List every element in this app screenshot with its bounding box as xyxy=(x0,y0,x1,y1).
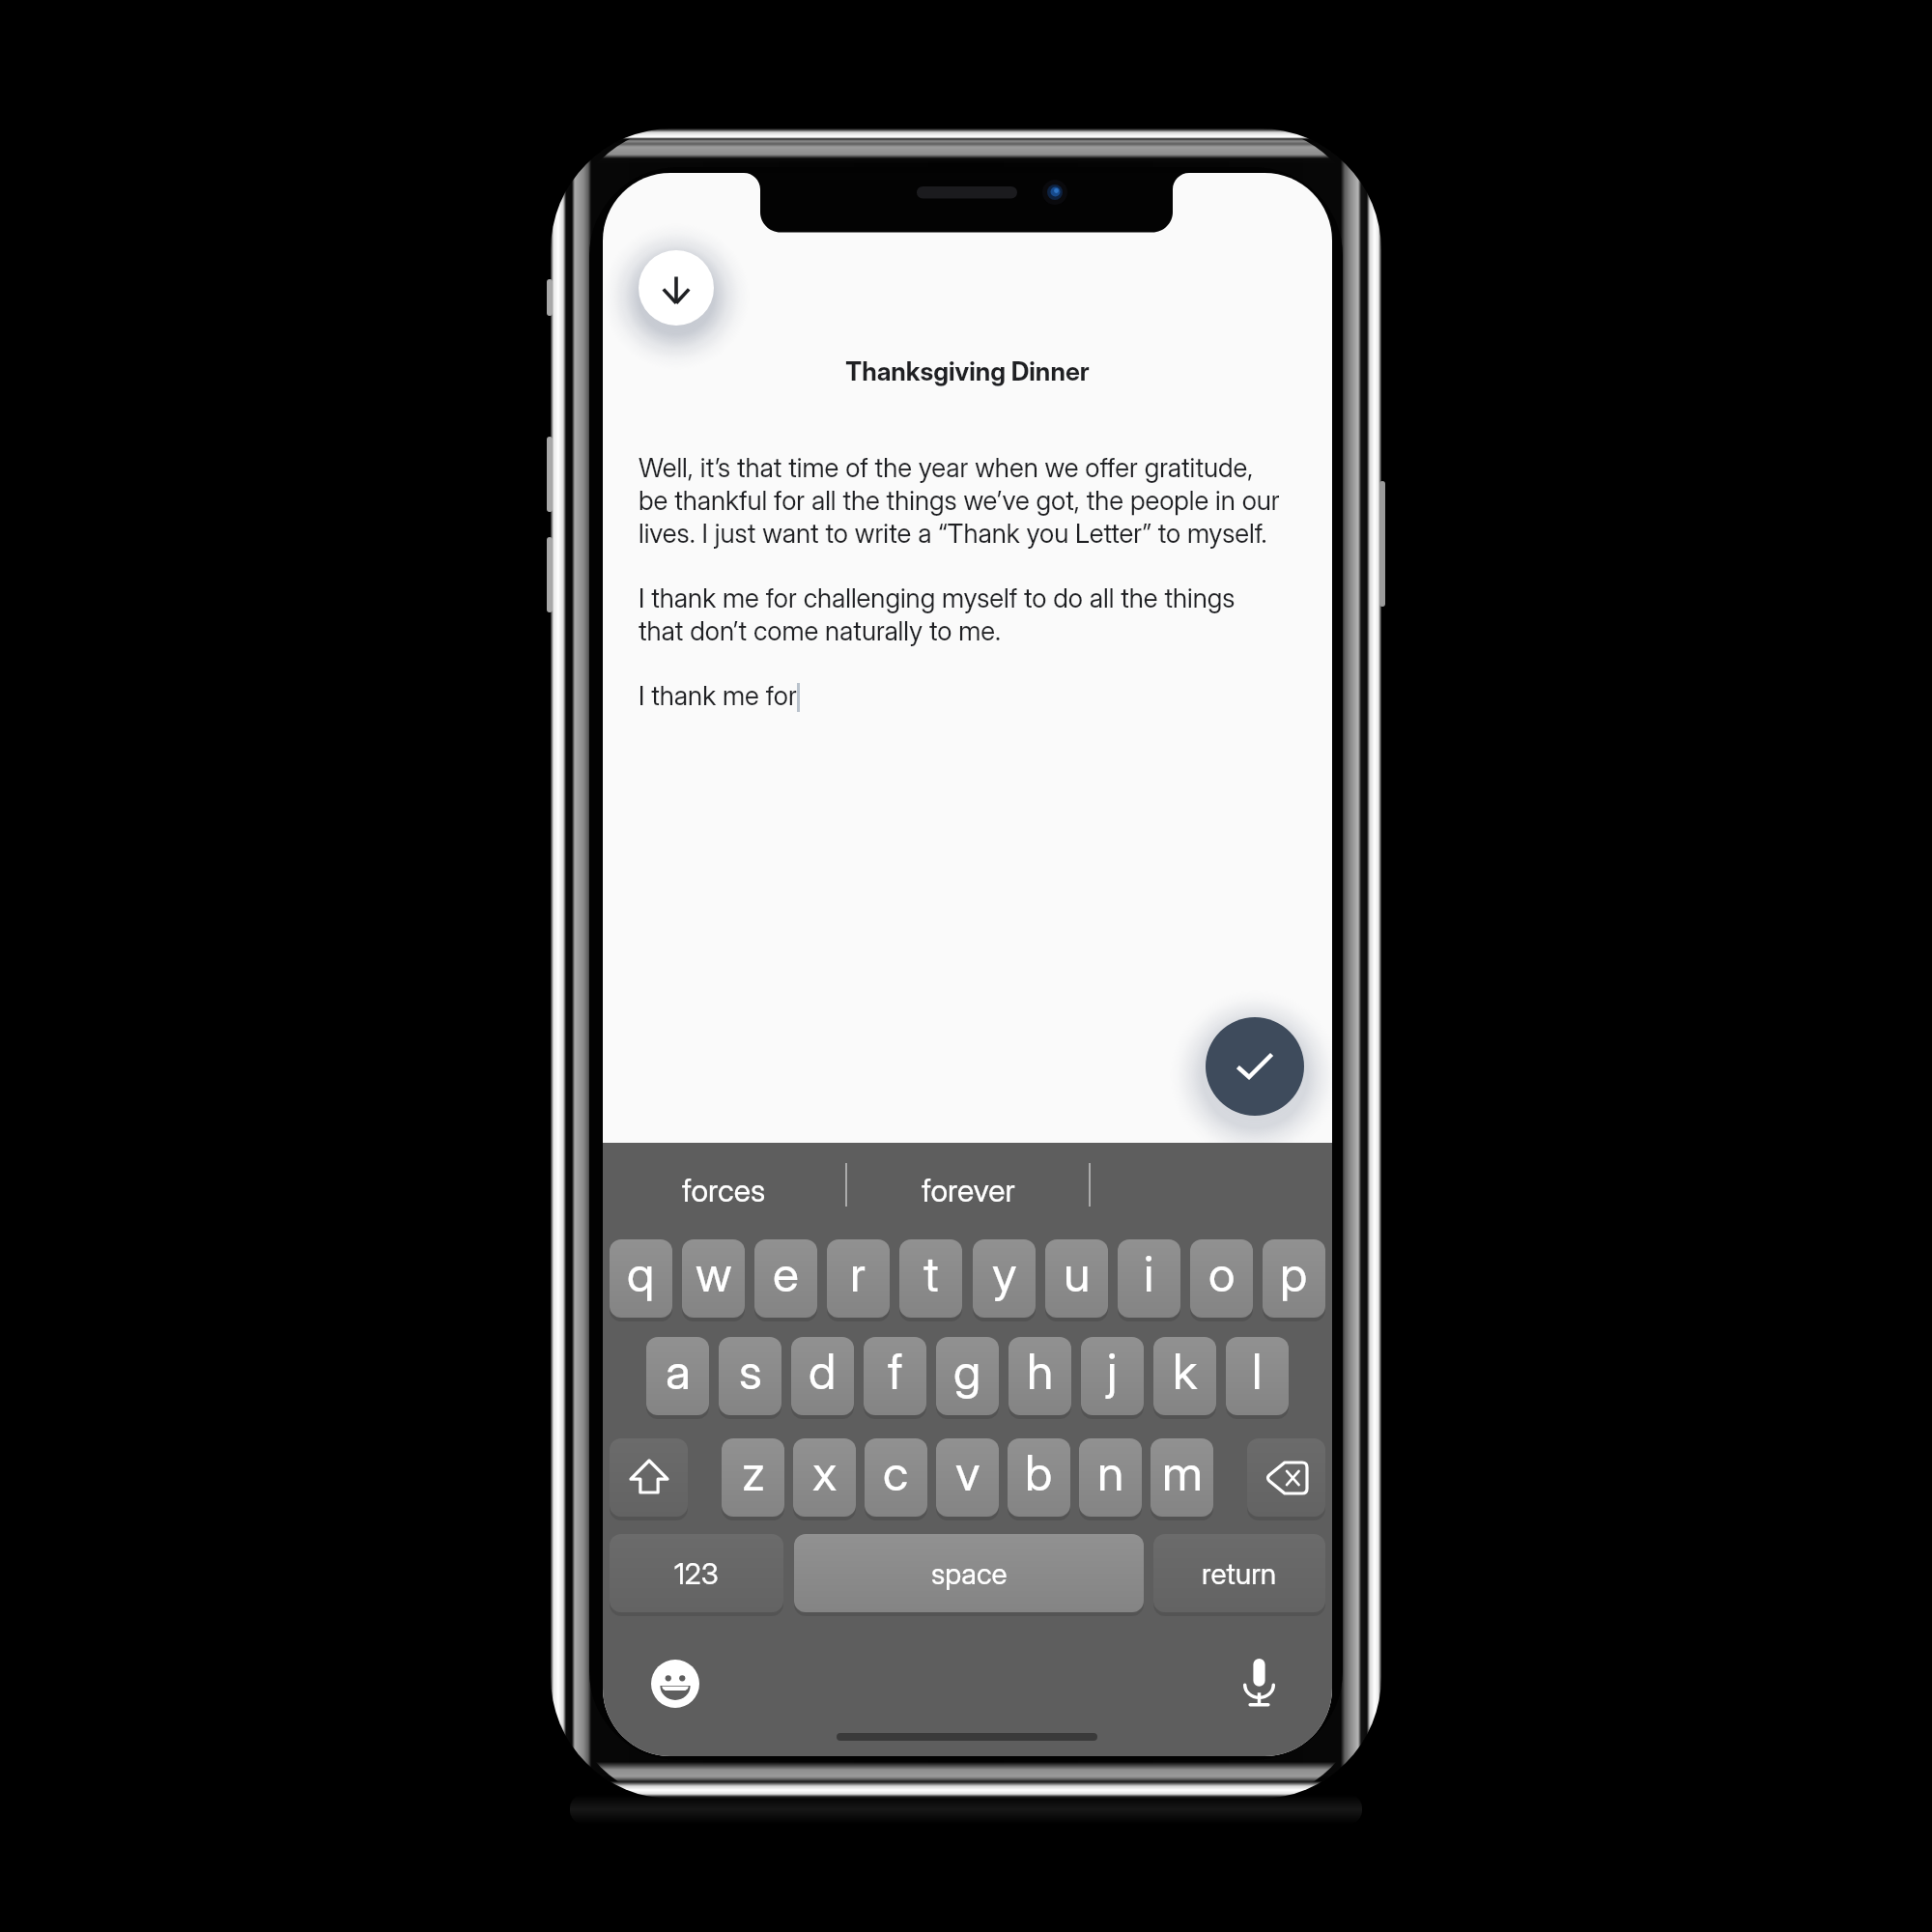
staticText: p xyxy=(1280,1245,1308,1303)
staticText: x xyxy=(812,1444,838,1502)
button[interactable]: l xyxy=(1226,1337,1289,1415)
button[interactable]: Shift xyxy=(610,1438,688,1517)
staticText: space xyxy=(931,1556,1008,1591)
button[interactable]: forever xyxy=(847,1143,1089,1238)
staticText: Thanksgiving Dinner xyxy=(603,355,1332,386)
staticText: return xyxy=(1202,1556,1277,1591)
staticText: I thank me for challenging myself to do … xyxy=(639,582,1236,646)
staticText: r xyxy=(850,1245,867,1303)
staticText: k xyxy=(1173,1343,1198,1401)
button[interactable]: q xyxy=(610,1239,672,1318)
button[interactable]: Collapse note xyxy=(639,250,714,326)
button[interactable]: g xyxy=(936,1337,999,1415)
button[interactable]: Voice input xyxy=(1241,1659,1277,1709)
button[interactable]: Save note xyxy=(1206,1017,1304,1116)
button[interactable]: p xyxy=(1263,1239,1325,1318)
button[interactable]: space xyxy=(794,1534,1144,1612)
staticText: l xyxy=(1252,1343,1263,1401)
staticText: q xyxy=(627,1245,655,1303)
staticText: c xyxy=(883,1444,909,1502)
button[interactable]: d xyxy=(791,1337,854,1415)
staticText: 123 xyxy=(674,1556,719,1591)
button[interactable]: i xyxy=(1118,1239,1180,1318)
button[interactable]: o xyxy=(1190,1239,1253,1318)
button[interactable]: c xyxy=(865,1438,927,1517)
staticText: g xyxy=(953,1343,981,1401)
button[interactable]: f xyxy=(864,1337,926,1415)
button[interactable]: b xyxy=(1008,1438,1070,1517)
button[interactable]: 123 xyxy=(610,1534,783,1612)
staticText: forever xyxy=(922,1172,1015,1209)
staticText: a xyxy=(666,1343,691,1401)
button[interactable]: a xyxy=(646,1337,709,1415)
button[interactable]: u xyxy=(1045,1239,1108,1318)
staticText: h xyxy=(1027,1343,1054,1401)
button[interactable]: j xyxy=(1081,1337,1144,1415)
button[interactable]: forces xyxy=(603,1143,845,1238)
button[interactable]: s xyxy=(719,1337,781,1415)
staticText: j xyxy=(1107,1343,1118,1401)
staticText: f xyxy=(888,1343,903,1401)
button[interactable]: Emoji keyboard xyxy=(651,1660,699,1708)
staticText: Well, it’s that time of the year when we… xyxy=(639,451,1280,549)
button[interactable]: e xyxy=(754,1239,817,1318)
staticText: d xyxy=(809,1343,837,1401)
staticText: m xyxy=(1162,1444,1203,1502)
button[interactable]: t xyxy=(899,1239,962,1318)
staticText: e xyxy=(773,1245,799,1303)
staticText: o xyxy=(1208,1245,1236,1303)
button[interactable]: h xyxy=(1009,1337,1071,1415)
staticText: y xyxy=(992,1245,1017,1303)
button[interactable]: x xyxy=(793,1438,856,1517)
staticText: I thank me for xyxy=(639,679,797,711)
button[interactable]: z xyxy=(722,1438,784,1517)
button[interactable]: m xyxy=(1151,1438,1213,1517)
staticText: u xyxy=(1064,1245,1091,1303)
staticText: n xyxy=(1097,1444,1124,1502)
staticText: i xyxy=(1144,1245,1154,1303)
staticText: v xyxy=(955,1444,980,1502)
staticText: t xyxy=(923,1245,939,1303)
button[interactable]: v xyxy=(936,1438,999,1517)
button[interactable]: return xyxy=(1153,1534,1325,1612)
staticText: s xyxy=(739,1343,762,1401)
button[interactable]: k xyxy=(1153,1337,1216,1415)
button[interactable]: y xyxy=(973,1239,1036,1318)
staticText: forces xyxy=(682,1172,766,1209)
button[interactable]: w xyxy=(682,1239,745,1318)
button[interactable]: n xyxy=(1079,1438,1142,1517)
staticText: w xyxy=(696,1245,732,1303)
button[interactable]: Backspace xyxy=(1247,1438,1325,1517)
staticText: b xyxy=(1025,1444,1053,1502)
staticText: z xyxy=(742,1444,765,1502)
button[interactable]: r xyxy=(827,1239,890,1318)
